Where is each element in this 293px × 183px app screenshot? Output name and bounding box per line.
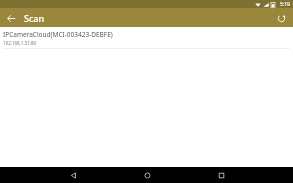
staticText: Scan: [24, 12, 45, 24]
staticText: 5:19: [280, 1, 290, 8]
staticText: 192.168.1.51:80: [3, 40, 37, 46]
button[interactable]: Recent apps: [184, 167, 258, 183]
button[interactable]: IPCameraCloud(MCI-003423-DEBFE): [0, 27, 293, 52]
button[interactable]: Navigate up: [4, 11, 18, 25]
button[interactable]: Refresh: [273, 10, 289, 26]
button[interactable]: Back: [36, 167, 110, 183]
staticText: IPCameraCloud(MCI-003423-DEBFE): [3, 30, 113, 39]
button[interactable]: Home: [110, 167, 184, 183]
